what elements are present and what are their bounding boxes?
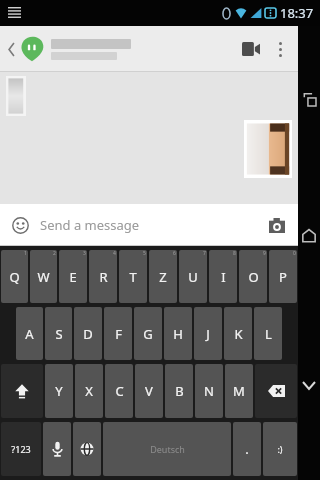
button[interactable]: O	[239, 250, 267, 303]
button[interactable]: Photo	[244, 120, 292, 178]
button[interactable]: Hide keyboard	[298, 374, 320, 396]
staticText: 5	[143, 250, 146, 257]
staticText: Y	[55, 382, 63, 400]
staticText: F	[115, 325, 122, 343]
button[interactable]: W	[30, 250, 57, 303]
button[interactable]: Backspace	[255, 364, 297, 418]
staticText: A	[25, 325, 34, 343]
button[interactable]: S	[45, 307, 72, 360]
button[interactable]: More options	[268, 32, 292, 66]
button[interactable]: R	[89, 250, 117, 303]
button[interactable]: ?123	[1, 422, 41, 476]
staticText: 1	[24, 250, 27, 257]
button[interactable]: Q	[1, 250, 28, 303]
staticText: G	[143, 325, 153, 343]
button[interactable]: P	[269, 250, 297, 303]
staticText: N	[204, 382, 214, 400]
button[interactable]: Home	[298, 224, 320, 246]
button[interactable]: Send photo	[264, 212, 290, 238]
button[interactable]: J	[194, 307, 222, 360]
staticText: E	[69, 268, 77, 286]
button[interactable]: D	[74, 307, 102, 360]
button[interactable]: Photo	[6, 76, 26, 116]
button[interactable]: E	[59, 250, 87, 303]
button[interactable]: Voice input	[43, 422, 71, 476]
staticText: 9	[263, 250, 266, 257]
button[interactable]: V	[135, 364, 163, 418]
button[interactable]: G	[134, 307, 162, 360]
staticText: U	[188, 268, 198, 286]
button[interactable]: K	[224, 307, 252, 360]
button[interactable]: H	[164, 307, 192, 360]
staticText: T	[129, 268, 137, 286]
staticText: W	[37, 268, 50, 286]
staticText: J	[206, 325, 210, 343]
staticText: Z	[159, 268, 167, 286]
button[interactable]: T	[119, 250, 147, 303]
button[interactable]: Change language	[73, 422, 101, 476]
button[interactable]: Video call	[234, 32, 268, 66]
staticText: I	[221, 268, 226, 286]
button[interactable]: M	[225, 364, 253, 418]
button[interactable]: Send a message	[40, 204, 264, 246]
staticText: Q	[9, 268, 20, 286]
button[interactable]: C	[105, 364, 133, 418]
staticText: 3	[83, 250, 86, 257]
staticText: B	[175, 382, 184, 400]
staticText: X	[85, 382, 93, 400]
staticText: V	[145, 382, 153, 400]
staticText: .	[245, 440, 249, 458]
button[interactable]: A	[16, 307, 43, 360]
button[interactable]: L	[254, 307, 282, 360]
button[interactable]: Deutsch	[103, 422, 231, 476]
staticText: H	[173, 325, 183, 343]
button[interactable]: N	[195, 364, 223, 418]
button[interactable]: X	[75, 364, 103, 418]
button[interactable]: Z	[149, 250, 177, 303]
button[interactable]: U	[179, 250, 207, 303]
staticText: O	[248, 268, 259, 286]
button[interactable]	[51, 26, 234, 72]
button[interactable]: Back	[4, 34, 18, 64]
staticText: S	[55, 325, 63, 343]
staticText: C	[115, 382, 124, 400]
staticText: :)	[277, 443, 283, 455]
staticText: ?123	[11, 443, 31, 455]
button[interactable]: .	[233, 422, 261, 476]
staticText: K	[234, 325, 243, 343]
staticText: 6	[173, 250, 176, 257]
staticText: D	[83, 325, 93, 343]
button[interactable]: Recent apps	[298, 88, 320, 110]
staticText: 0	[293, 250, 296, 257]
staticText: P	[279, 268, 287, 286]
staticText: 7	[203, 250, 206, 257]
button[interactable]: :)	[263, 422, 297, 476]
staticText: R	[99, 268, 108, 286]
staticText: Deutsch	[150, 443, 185, 455]
button[interactable]: F	[104, 307, 132, 360]
button[interactable]: Insert emoji	[8, 213, 32, 237]
button[interactable]: Y	[45, 364, 73, 418]
staticText: 8	[233, 250, 236, 257]
button[interactable]: Shift	[1, 364, 43, 418]
button[interactable]: B	[165, 364, 193, 418]
staticText: 2	[53, 250, 56, 257]
staticText: Send a message	[40, 216, 140, 234]
staticText: 18:37	[280, 4, 314, 22]
staticText: 4	[113, 250, 116, 257]
button[interactable]	[19, 36, 45, 62]
button[interactable]: I	[209, 250, 237, 303]
staticText: L	[265, 325, 272, 343]
staticText: M	[233, 382, 245, 400]
